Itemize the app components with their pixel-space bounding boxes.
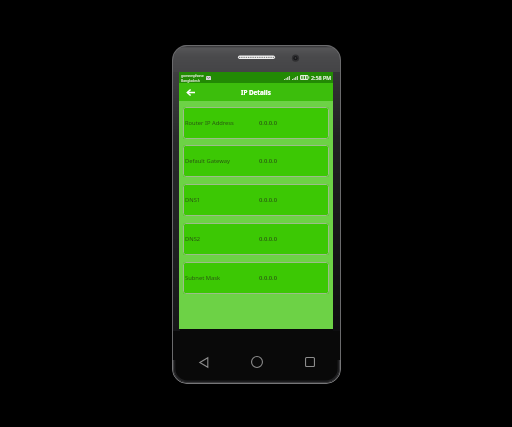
staticText: DNS2 [185,235,201,243]
staticText: Subnet Mask [185,274,221,282]
button[interactable]: Home [247,352,267,372]
button[interactable]: Subnet Mask [183,262,329,294]
button[interactable]: DNS2 [183,223,329,255]
staticText: Bangladesh [181,78,200,83]
staticText: 0.0.0.0 [259,157,277,165]
button[interactable]: Back [194,352,214,372]
staticText: 2:58 PM [311,74,332,81]
button[interactable]: Default Gateway [183,145,329,177]
staticText: IP Details [241,88,271,97]
staticText: gomemphone [181,73,204,78]
staticText: 0.0.0.0 [259,196,277,204]
button[interactable]: DNS1 [183,184,329,216]
button[interactable]: Router IP Address [183,107,329,139]
button[interactable]: Recents [300,352,320,372]
staticText: Default Gateway [185,157,230,165]
staticText: DNS1 [185,196,201,204]
staticText: 0.0.0.0 [259,119,277,127]
staticText: Router IP Address [185,119,234,127]
staticText: 0.0.0.0 [259,274,277,282]
staticText: 0.0.0.0 [259,235,277,243]
button[interactable]: Back [184,86,197,99]
